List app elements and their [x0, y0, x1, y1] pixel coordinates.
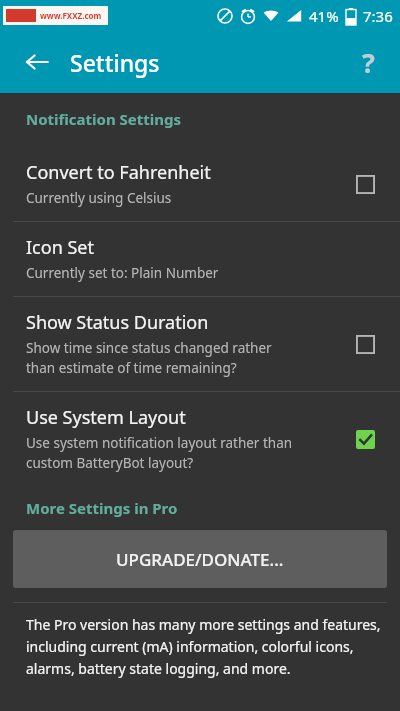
- staticText: 41%: [309, 6, 339, 26]
- button[interactable]: Convert to Fahrenheit: [0, 147, 400, 221]
- button[interactable]: Icon Set: [0, 222, 400, 296]
- button[interactable]: Use System Layout: [0, 392, 400, 486]
- staticText: Use system notification layout rather th…: [26, 434, 293, 452]
- staticText: Currently set to: Plain Number: [26, 264, 219, 282]
- button[interactable]: Checked: [348, 422, 382, 456]
- staticText: ?: [362, 44, 375, 81]
- button[interactable]: Show Status Duration: [0, 297, 400, 391]
- staticText: Use System Layout: [26, 405, 186, 430]
- button[interactable]: Unchecked: [348, 167, 382, 201]
- staticText: Icon Set: [26, 235, 94, 260]
- staticText: custom BatteryBot layout?: [26, 454, 194, 472]
- staticText: including current (mA) information, colo…: [26, 637, 354, 656]
- staticText: Currently using Celsius: [26, 189, 172, 207]
- button[interactable]: Help: [344, 38, 392, 86]
- staticText: Notification Settings: [26, 109, 182, 129]
- staticText: More Settings in Pro: [26, 498, 178, 518]
- button[interactable]: Back: [14, 39, 60, 85]
- button[interactable]: UPGRADE/DONATE...: [13, 530, 387, 588]
- staticText: Show Status Duration: [26, 310, 209, 335]
- staticText: than estimate of time remaining?: [26, 359, 237, 377]
- staticText: The Pro version has many more settings a…: [26, 615, 381, 634]
- staticText: alarms, battery state logging, and more.: [26, 659, 291, 678]
- staticText: Show time since status changed rather: [26, 339, 272, 357]
- staticText: www.FXXZ.com: [40, 10, 102, 21]
- staticText: UPGRADE/DONATE...: [116, 548, 284, 571]
- staticText: 7:36: [363, 6, 393, 26]
- button[interactable]: Unchecked: [348, 327, 382, 361]
- staticText: Settings: [70, 47, 160, 78]
- staticText: Convert to Fahrenheit: [26, 160, 211, 185]
